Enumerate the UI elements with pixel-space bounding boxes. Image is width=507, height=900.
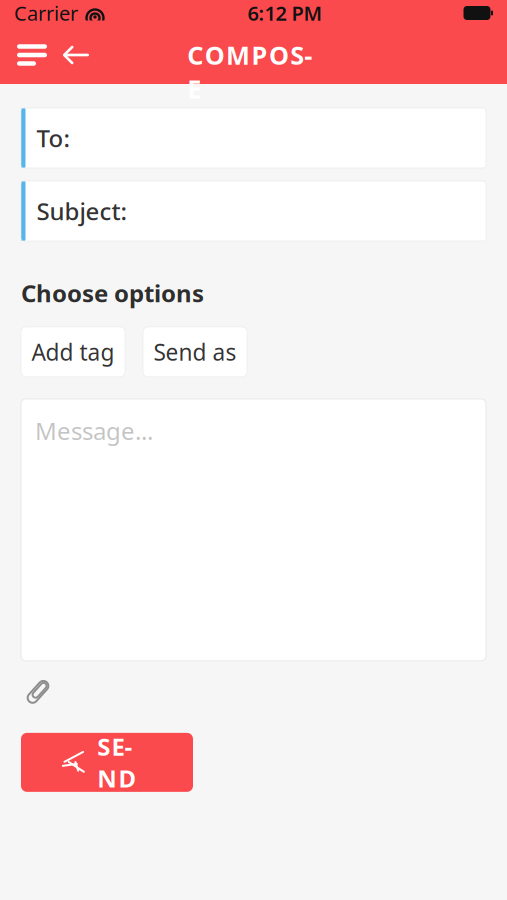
staticText: Carrier (14, 0, 78, 26)
button[interactable]: Message... (21, 399, 486, 661)
staticText: Add tag (31, 337, 114, 367)
staticText: Message... (35, 415, 153, 447)
staticText: Choose options (21, 277, 204, 309)
button[interactable]: Add tag (21, 327, 125, 377)
staticText: 6:12 PM (247, 0, 322, 26)
staticText: COMPOSE (187, 38, 320, 72)
button[interactable]: SEND (21, 733, 193, 792)
button[interactable]: Subject: (21, 181, 486, 241)
button[interactable]: To: (21, 108, 486, 168)
button[interactable]: Menu (10, 33, 54, 77)
staticText: To: (36, 122, 70, 154)
staticText: Send as (153, 337, 236, 367)
button[interactable]: Back (54, 33, 98, 77)
staticText: SEND (97, 730, 154, 794)
button[interactable]: Attach file (21, 675, 55, 709)
button[interactable]: Send as (143, 327, 247, 377)
staticText: Subject: (36, 195, 127, 227)
